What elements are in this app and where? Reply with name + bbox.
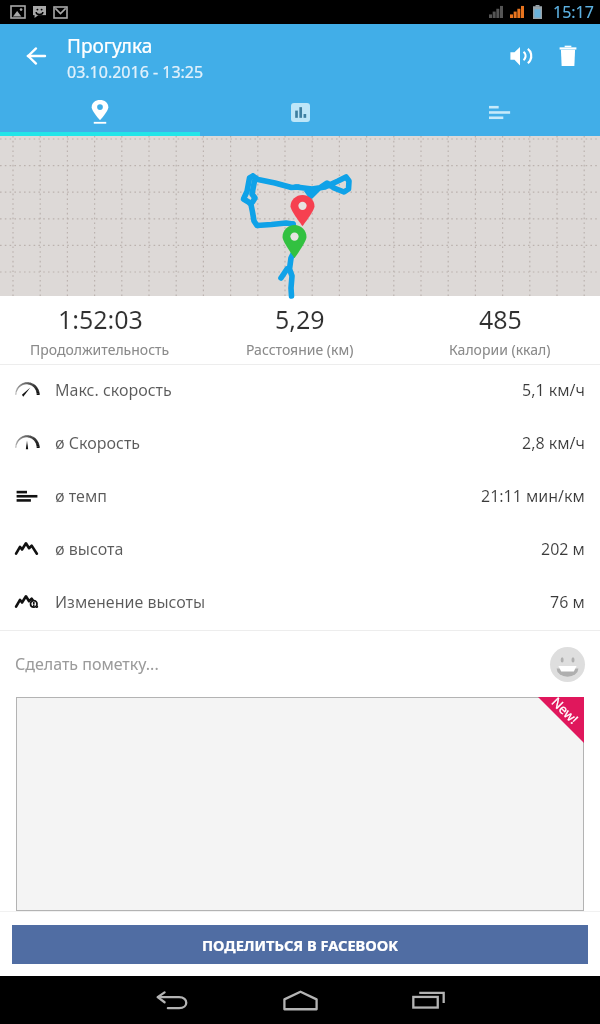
staticText: New! [548, 693, 583, 728]
staticText: 76 м [550, 591, 585, 613]
button[interactable]: Сделать пометку... [0, 631, 600, 697]
button[interactable]: Home [256, 976, 345, 1024]
button[interactable]: Sound [496, 32, 544, 80]
staticText: 21:11 мин/км [481, 485, 585, 507]
staticText: 485 [479, 302, 522, 336]
staticText: Изменение высоты [55, 591, 206, 613]
button[interactable] [16, 697, 584, 911]
staticText: ПОДЕЛИТЬСЯ В FACEBOOK [202, 935, 399, 955]
button[interactable]: Statistics [200, 88, 400, 136]
staticText: Макс. скорость [55, 379, 172, 401]
staticText: 5,29 [275, 302, 325, 336]
button[interactable]: 485 [400, 302, 600, 359]
button[interactable]: ø Скорость [0, 418, 600, 471]
staticText: 202 м [541, 538, 585, 560]
button[interactable]: ПОДЕЛИТЬСЯ В FACEBOOK [12, 925, 588, 964]
button[interactable]: Back [128, 976, 217, 1024]
staticText: Расстояние (км) [246, 340, 354, 359]
staticText: 2,8 км/ч [522, 432, 585, 454]
button[interactable]: 1:52:03 [0, 302, 200, 359]
button[interactable]: Изменение высоты [0, 577, 600, 630]
staticText: 1:52:03 [58, 302, 143, 336]
button[interactable]: Макс. скорость [0, 365, 600, 418]
staticText: 5,1 км/ч [522, 379, 585, 401]
button[interactable]: Details [400, 88, 600, 136]
button[interactable]: Add emoji [550, 647, 585, 682]
staticText: ø темп [55, 485, 107, 507]
button[interactable]: Delete [544, 32, 592, 80]
staticText: ø Скорость [55, 432, 141, 454]
staticText: Прогулка [67, 33, 153, 59]
button[interactable]: Back [12, 32, 60, 80]
staticText: 03.10.2016 - 13:25 [67, 61, 204, 83]
button[interactable]: Recent apps [384, 976, 473, 1024]
staticText: 15:17 [553, 1, 594, 23]
button[interactable]: ø темп [0, 471, 600, 524]
button[interactable]: ø высота [0, 524, 600, 577]
staticText: Сделать пометку... [15, 653, 159, 675]
staticText: Калории (ккал) [449, 340, 551, 359]
button[interactable]: 5,29 [200, 302, 400, 359]
staticText: ø высота [55, 538, 124, 560]
button[interactable]: Map [0, 88, 200, 136]
staticText: Продолжительность [30, 340, 170, 359]
